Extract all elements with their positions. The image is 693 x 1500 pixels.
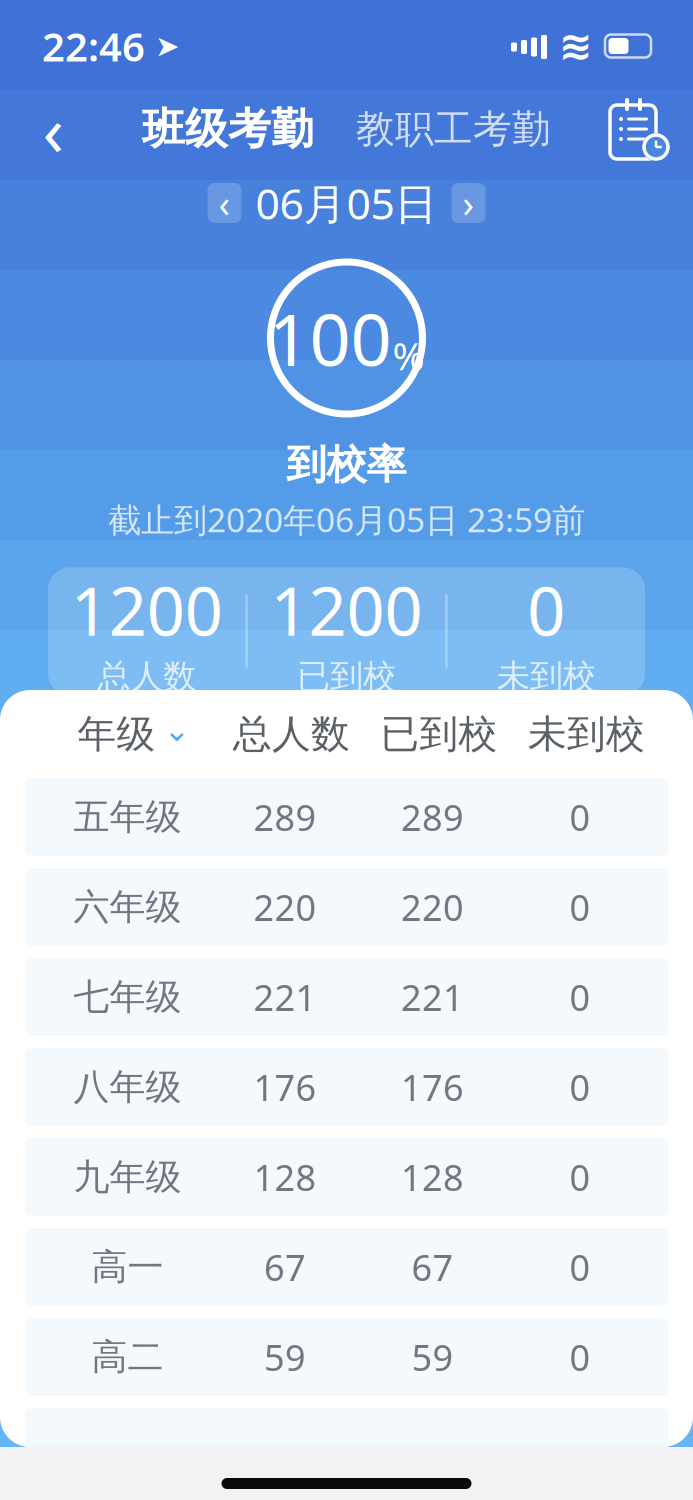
staticText: 0 (569, 883, 590, 931)
staticText: 未到校 (497, 656, 596, 697)
staticText: 总人数 (233, 710, 350, 758)
staticText: 289 (253, 793, 316, 841)
staticText: 年级 (77, 710, 155, 758)
button[interactable]: 后一天 (451, 183, 485, 223)
staticText: 高一 (91, 1245, 163, 1289)
staticText: › (462, 178, 474, 228)
button[interactable]: 高一 (25, 1228, 668, 1306)
button[interactable]: 年级 (51, 704, 216, 764)
staticText: 九年级 (73, 1155, 181, 1199)
staticText: 截止到2020年06月05日 23:59前 (108, 497, 585, 541)
staticText: 到校率 (286, 440, 406, 489)
staticText: 06月05日 (255, 175, 437, 231)
staticText: 七年级 (73, 975, 181, 1019)
staticText: 0 (569, 1243, 590, 1291)
staticText: 220 (401, 883, 464, 931)
staticText: 1200 (270, 566, 422, 654)
staticText: 总人数 (97, 656, 196, 697)
staticText: 已到校 (297, 656, 396, 697)
staticText: 100 (268, 290, 391, 386)
button[interactable]: 八年级 (25, 1048, 668, 1126)
staticText: 289 (401, 793, 464, 841)
staticText: 1200 (71, 566, 223, 654)
staticText: 六年级 (73, 885, 181, 929)
button[interactable]: 五年级 (25, 778, 668, 856)
staticText: 0 (569, 1153, 590, 1201)
button[interactable]: 班级考勤 (142, 103, 314, 155)
staticText: 未到校 (528, 710, 645, 758)
staticText: 67 (264, 1243, 306, 1291)
staticText: 59 (411, 1333, 453, 1381)
staticText: 高二 (91, 1335, 163, 1379)
staticText: 22:46 (42, 19, 145, 72)
staticText: 67 (411, 1243, 453, 1291)
staticText: ‹ (42, 83, 63, 175)
staticText: 59 (264, 1333, 306, 1381)
staticText: 0 (569, 1063, 590, 1111)
button[interactable]: 教职工考勤 (356, 105, 551, 153)
staticText: 教职工考勤 (356, 105, 551, 153)
staticText: 176 (253, 1063, 316, 1111)
staticText: ‹ (218, 178, 230, 228)
staticText: 221 (401, 973, 464, 1021)
staticText: ≋ (559, 23, 593, 69)
staticText: 220 (253, 883, 316, 931)
button[interactable]: 九年级 (25, 1138, 668, 1216)
button[interactable]: 七年级 (25, 958, 668, 1036)
staticText: 128 (401, 1153, 464, 1201)
staticText: 0 (569, 1333, 590, 1381)
staticText: ➤ (145, 29, 180, 63)
staticText: 221 (253, 973, 316, 1021)
button[interactable]: 前一天 (207, 183, 241, 223)
staticText: 五年级 (73, 795, 181, 839)
staticText: ⌄ (163, 712, 190, 748)
button[interactable]: 六年级 (25, 868, 668, 946)
staticText: 0 (569, 793, 590, 841)
staticText: 128 (253, 1153, 316, 1201)
button[interactable]: 高二 (25, 1318, 668, 1396)
button[interactable]: 考勤记录 (605, 94, 675, 164)
staticText: 0 (569, 973, 590, 1021)
staticText: 八年级 (73, 1065, 181, 1109)
staticText: % (392, 329, 424, 381)
staticText: 0 (527, 566, 565, 654)
staticText: 已到校 (380, 710, 497, 758)
staticText: 176 (401, 1063, 464, 1111)
staticText: 班级考勤 (142, 103, 314, 155)
button[interactable]: 返回 (18, 94, 88, 164)
